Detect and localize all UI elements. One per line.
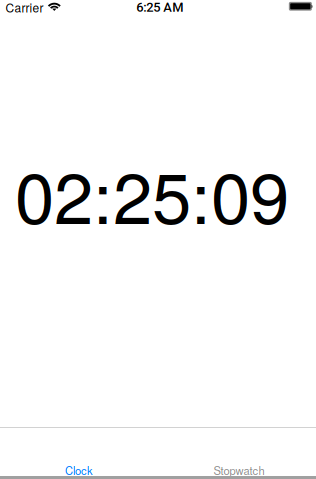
staticText: 02:25:09	[15, 143, 289, 244]
button[interactable]: Stopwatch	[160, 428, 316, 479]
staticText: Clock	[65, 462, 93, 478]
staticText: 6:25 AM	[136, 0, 183, 15]
staticText: Stopwatch	[213, 462, 264, 478]
button[interactable]: Clock	[0, 428, 158, 479]
staticText: Carrier	[5, 0, 43, 16]
